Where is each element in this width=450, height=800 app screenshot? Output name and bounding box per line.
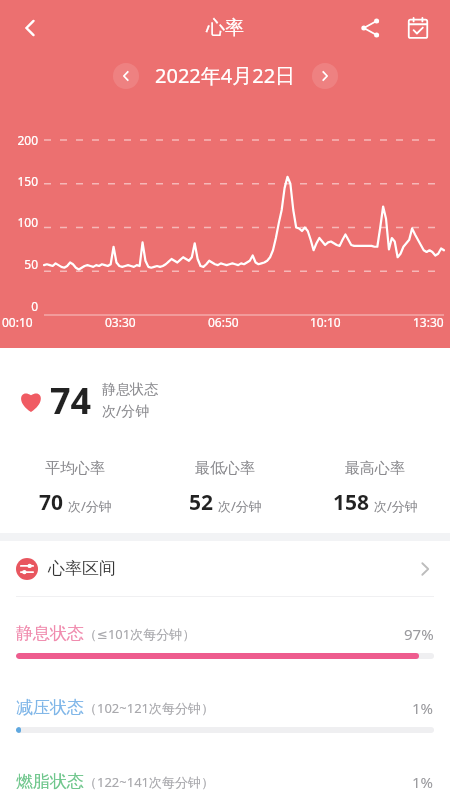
staticText: 0 — [0, 298, 38, 314]
button[interactable]: 平均心率 — [0, 459, 150, 517]
staticText: 减压状态 — [16, 697, 84, 718]
staticText: 00:10 — [2, 314, 33, 330]
staticText: 燃脂状态 — [16, 771, 84, 792]
staticText: 静息状态 — [16, 623, 84, 644]
staticText: 13:30 — [413, 314, 444, 330]
staticText: 100 — [0, 214, 38, 230]
staticText: 次/分钟 — [374, 497, 418, 515]
staticText: 2022年4月22日 — [155, 62, 296, 89]
staticText: 150 — [0, 173, 38, 189]
staticText: 200 — [0, 132, 38, 148]
staticText: 74 — [50, 376, 92, 425]
staticText: 06:50 — [208, 314, 239, 330]
button[interactable]: 最低心率 — [150, 459, 300, 517]
button[interactable]: Next day — [312, 63, 338, 89]
staticText: 03:30 — [105, 314, 136, 330]
staticText: 次/分钟 — [102, 401, 150, 420]
button[interactable]: 心率区间 — [0, 541, 450, 596]
staticText: 10:10 — [310, 314, 341, 330]
staticText: 心率区间 — [48, 558, 116, 579]
button[interactable]: 最高心率 — [300, 459, 450, 517]
staticText: （≤101次每分钟） — [84, 625, 196, 643]
staticText: 最低心率 — [195, 459, 255, 478]
staticText: 平均心率 — [45, 459, 105, 478]
staticText: 52 — [189, 488, 214, 517]
button[interactable]: Previous day — [113, 63, 139, 89]
staticText: 1% — [412, 772, 434, 792]
staticText: 次/分钟 — [218, 497, 262, 515]
staticText: 最高心率 — [345, 459, 405, 478]
staticText: 静息状态 — [102, 381, 158, 399]
button[interactable]: 减压状态 — [0, 697, 450, 733]
staticText: 70 — [39, 488, 64, 517]
button[interactable]: 静息状态 — [0, 623, 450, 659]
button[interactable]: Share — [348, 6, 392, 50]
staticText: （102~121次每分钟） — [84, 699, 215, 717]
staticText: 158 — [333, 488, 370, 517]
staticText: 1% — [412, 698, 434, 718]
staticText: 心率 — [206, 16, 244, 40]
button[interactable]: Calendar — [396, 6, 440, 50]
button[interactable]: 燃脂状态 — [0, 771, 450, 800]
button[interactable]: Back — [8, 6, 52, 50]
staticText: 97% — [404, 624, 434, 644]
staticText: 50 — [0, 256, 38, 272]
staticText: （122~141次每分钟） — [84, 773, 215, 791]
staticText: 次/分钟 — [68, 497, 112, 515]
